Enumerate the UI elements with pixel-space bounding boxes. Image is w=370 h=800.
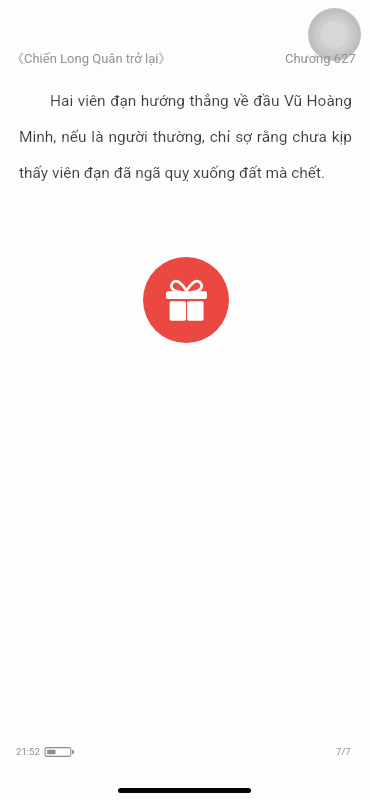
staticText: 21:52: [16, 746, 40, 757]
button[interactable]: Tặng quà: [143, 257, 229, 343]
staticText: Chương 627: [285, 51, 356, 66]
staticText: 《Chiến Long Quân trở lại》: [11, 50, 172, 66]
staticText: Hai viên đạn hướng thẳng về đầu Vũ Hoàng…: [19, 92, 352, 182]
staticText: 7/7: [336, 746, 351, 757]
